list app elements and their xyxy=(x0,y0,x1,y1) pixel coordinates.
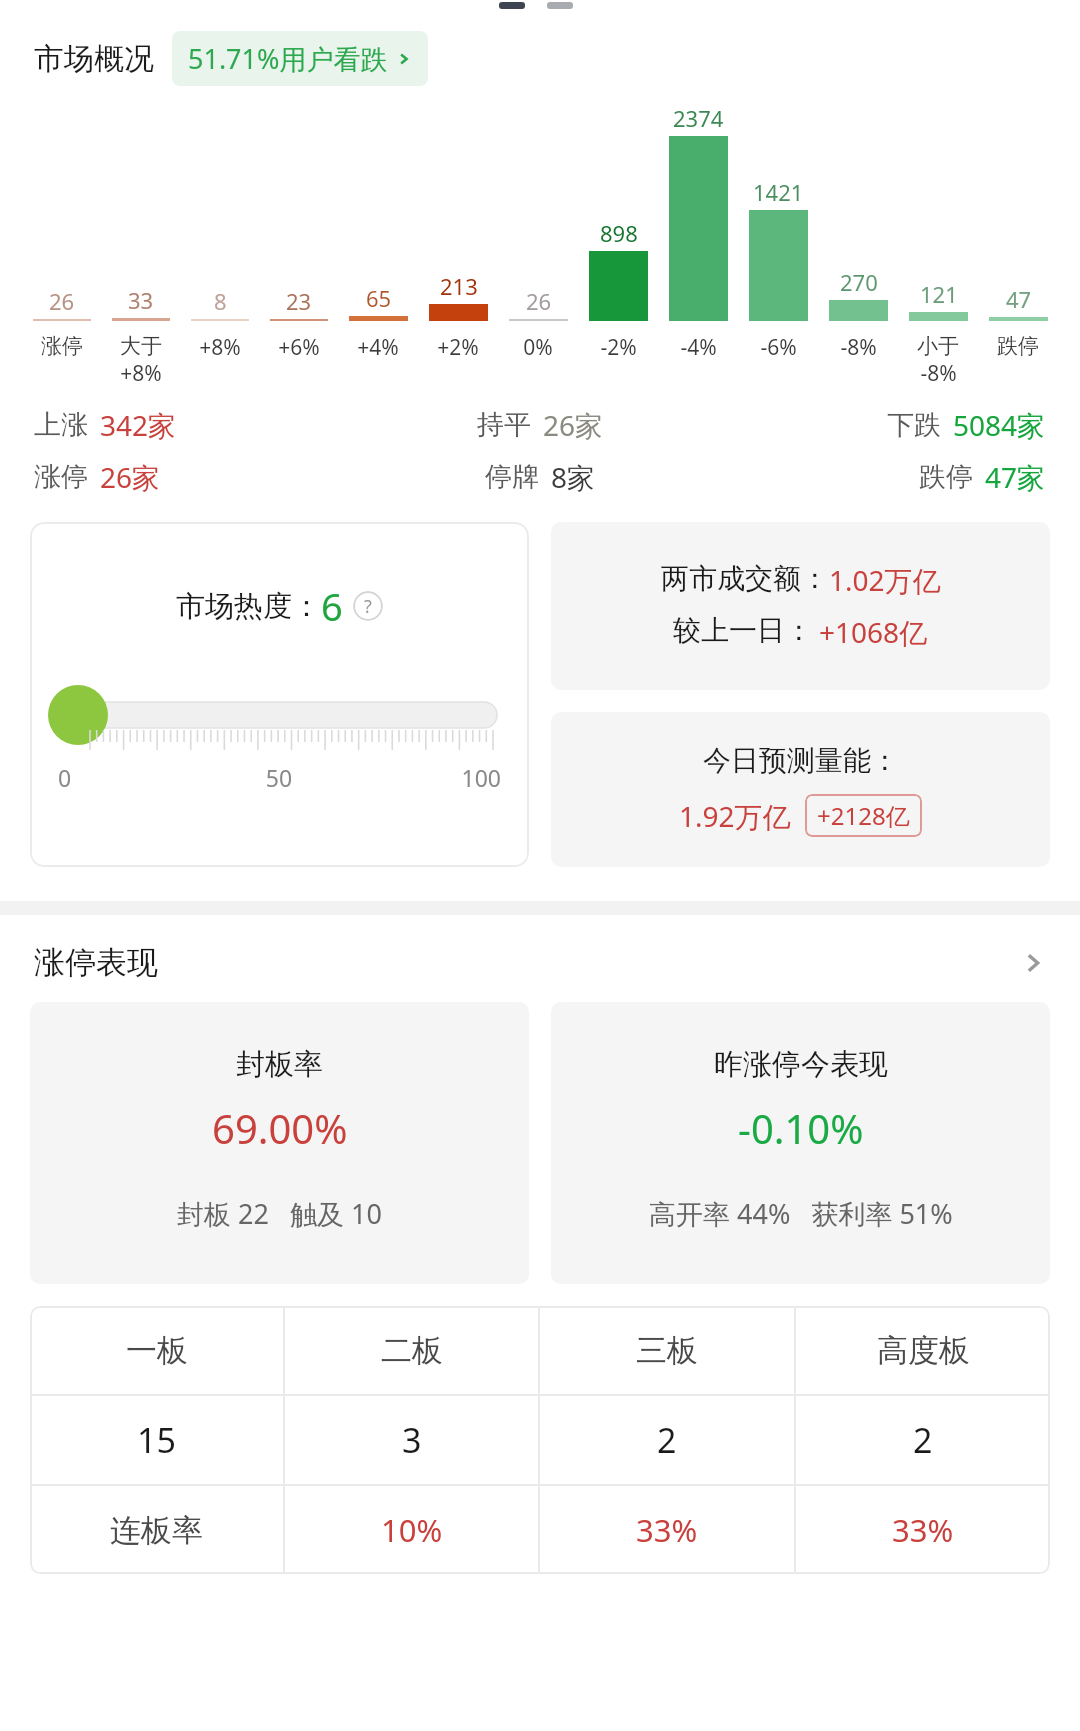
button[interactable]: 33% xyxy=(540,1486,794,1574)
staticText: 封板率 xyxy=(236,1046,323,1083)
staticText: 26家 xyxy=(543,406,604,444)
staticText: 898 xyxy=(600,218,638,248)
staticText: 47 xyxy=(1006,284,1032,314)
staticText: 5084家 xyxy=(953,406,1046,444)
button[interactable]: 封板率 xyxy=(30,1002,529,1284)
staticText: 47家 xyxy=(985,458,1046,496)
button[interactable]: 连板率 xyxy=(30,1486,283,1574)
staticText: 69.00% xyxy=(212,1101,348,1155)
staticText: 1.02万亿 xyxy=(829,561,941,599)
staticText: 100 xyxy=(353,762,501,793)
button[interactable]: 33% xyxy=(796,1486,1050,1574)
staticText: +6% xyxy=(278,333,320,362)
staticText: 涨停 xyxy=(34,460,88,494)
staticText: 213 xyxy=(440,271,478,301)
button[interactable]: 15 xyxy=(30,1396,283,1484)
staticText: ? xyxy=(364,594,372,619)
button[interactable]: 市场热度： xyxy=(30,522,529,867)
button[interactable]: 高度板 xyxy=(796,1306,1050,1394)
button[interactable]: 2 xyxy=(540,1396,794,1484)
staticText: 跌停 xyxy=(997,333,1039,359)
staticText: 65 xyxy=(366,283,392,313)
staticText: 封板 22 触及 10 xyxy=(177,1195,382,1232)
staticText: 连板率 xyxy=(110,1511,203,1550)
button[interactable]: 一板 xyxy=(30,1306,283,1394)
staticText: 停牌 xyxy=(485,460,539,494)
staticText: 26家 xyxy=(100,458,161,496)
staticText: 市场概况 xyxy=(34,40,154,78)
staticText: 2 xyxy=(913,1417,933,1463)
staticText: 33 xyxy=(128,285,154,315)
staticText: +8% xyxy=(199,333,241,362)
other: 更多 xyxy=(1020,950,1046,976)
staticText: 33% xyxy=(636,1509,698,1551)
staticText: 1.92万亿 xyxy=(679,797,791,835)
staticText: 涨停表现 xyxy=(34,943,158,982)
staticText: 高开率 44% 获利率 51% xyxy=(649,1195,953,1232)
staticText: 0 xyxy=(58,762,205,793)
button[interactable]: 涨停表现 xyxy=(0,943,1080,982)
button[interactable]: 两市成交额： xyxy=(551,522,1050,690)
staticText: 涨停 xyxy=(41,333,83,359)
staticText: 一板 xyxy=(126,1331,188,1370)
staticText: 下跌 xyxy=(887,408,941,442)
staticText: +8% xyxy=(120,359,162,388)
button[interactable]: 三板 xyxy=(540,1306,794,1394)
staticText: 23 xyxy=(286,286,312,316)
staticText: +2% xyxy=(437,333,479,362)
staticText: 1421 xyxy=(753,177,804,207)
staticText: 市场热度： xyxy=(176,588,321,625)
staticText: -8% xyxy=(920,359,957,388)
staticText: 6 xyxy=(321,580,343,632)
staticText: 2 xyxy=(657,1417,677,1463)
staticText: 2374 xyxy=(673,103,724,133)
staticText: -2% xyxy=(600,333,637,362)
button[interactable]: 二板 xyxy=(285,1306,538,1394)
staticText: 342家 xyxy=(100,406,177,444)
button[interactable]: 3 xyxy=(285,1396,538,1484)
staticText: 8 xyxy=(214,286,227,316)
staticText: 0% xyxy=(523,333,553,362)
staticText: +4% xyxy=(357,333,399,362)
staticText: -0.10% xyxy=(738,1101,864,1155)
staticText: 26 xyxy=(526,286,552,316)
staticText: 大于 xyxy=(120,333,162,359)
staticText: -6% xyxy=(760,333,797,362)
staticText: 较上一日： xyxy=(673,613,813,648)
staticText: 51.71%用户看跌 xyxy=(188,40,388,77)
staticText: 33% xyxy=(892,1509,954,1551)
staticText: 小于 xyxy=(917,333,959,359)
staticText: 50 xyxy=(205,762,353,793)
button[interactable]: 51.71%用户看跌 xyxy=(172,31,428,86)
staticText: 10% xyxy=(381,1509,443,1551)
staticText: 121 xyxy=(920,279,958,309)
staticText: 两市成交额： xyxy=(661,561,829,596)
staticText: 270 xyxy=(840,267,878,297)
button[interactable]: 帮助 xyxy=(353,591,383,621)
staticText: 8家 xyxy=(551,458,596,496)
staticText: +1068亿 xyxy=(819,613,928,651)
staticText: 持平 xyxy=(477,408,531,442)
staticText: 26 xyxy=(49,286,75,316)
button[interactable]: 今日预测量能： xyxy=(551,712,1050,867)
staticText: 今日预测量能： xyxy=(703,743,899,778)
staticText: 上涨 xyxy=(34,408,88,442)
staticText: +2128亿 xyxy=(817,799,910,832)
button[interactable]: 2 xyxy=(796,1396,1050,1484)
staticText: 15 xyxy=(137,1417,176,1463)
staticText: 三板 xyxy=(636,1331,698,1370)
staticText: 二板 xyxy=(381,1331,443,1370)
staticText: 跌停 xyxy=(919,460,973,494)
button[interactable]: 昨涨停今表现 xyxy=(551,1002,1050,1284)
staticText: 昨涨停今表现 xyxy=(714,1046,888,1083)
staticText: -4% xyxy=(680,333,717,362)
staticText: 3 xyxy=(402,1417,422,1463)
staticText: 高度板 xyxy=(877,1331,970,1370)
staticText: -8% xyxy=(840,333,877,362)
button[interactable]: 10% xyxy=(285,1486,538,1574)
